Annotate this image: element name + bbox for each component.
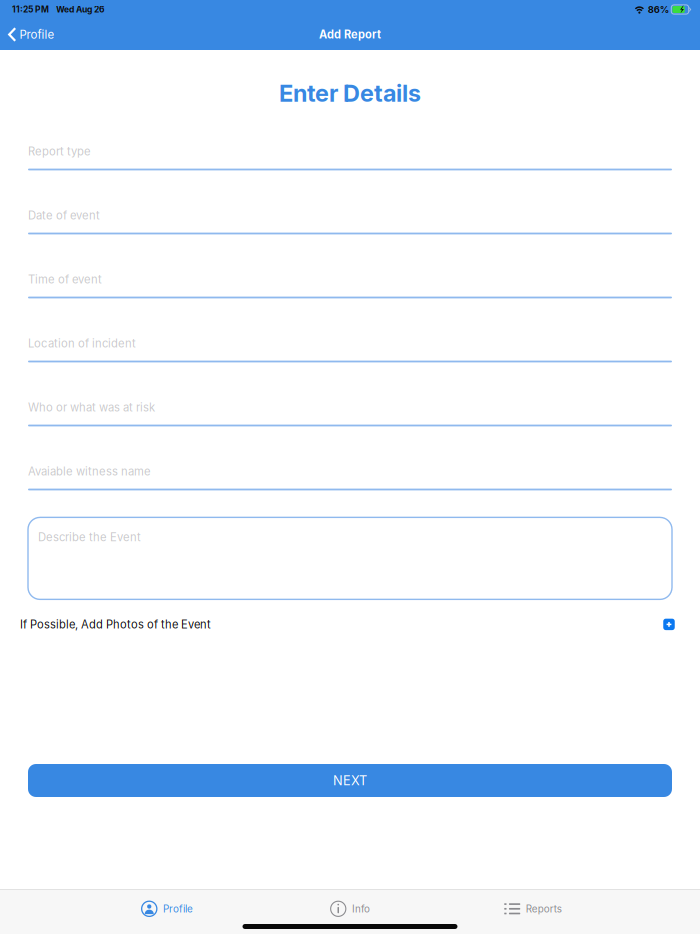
staticText: If Possible, Add Photos of the Event [20,618,211,631]
staticText: Report type [28,145,91,158]
button[interactable]: Info [258,896,441,922]
staticText: Profile [19,28,54,41]
staticText: Describe the Event [38,530,141,544]
staticText: Info [352,903,370,915]
staticText: Enter Details [279,79,421,107]
staticText: Date of event [28,209,100,222]
button[interactable]: Add photo [659,614,679,634]
staticText: NEXT [333,773,367,788]
staticText: Reports [526,903,562,915]
staticText: Profile [163,903,193,915]
staticText: 11:25 PM [12,4,49,15]
staticText: Time of event [28,273,102,286]
button[interactable]: Profile [75,896,258,922]
staticText: 86% [648,4,669,15]
button[interactable]: Reports [441,896,624,922]
staticText: Who or what was at risk [28,401,155,414]
staticText: Location of incident [28,337,136,350]
staticText: Avaiable witness name [28,465,151,478]
button[interactable]: NEXT [28,764,672,797]
staticText: Add Report [319,28,381,41]
staticText: Wed Aug 26 [56,4,105,15]
button[interactable]: Profile [0,19,62,50]
